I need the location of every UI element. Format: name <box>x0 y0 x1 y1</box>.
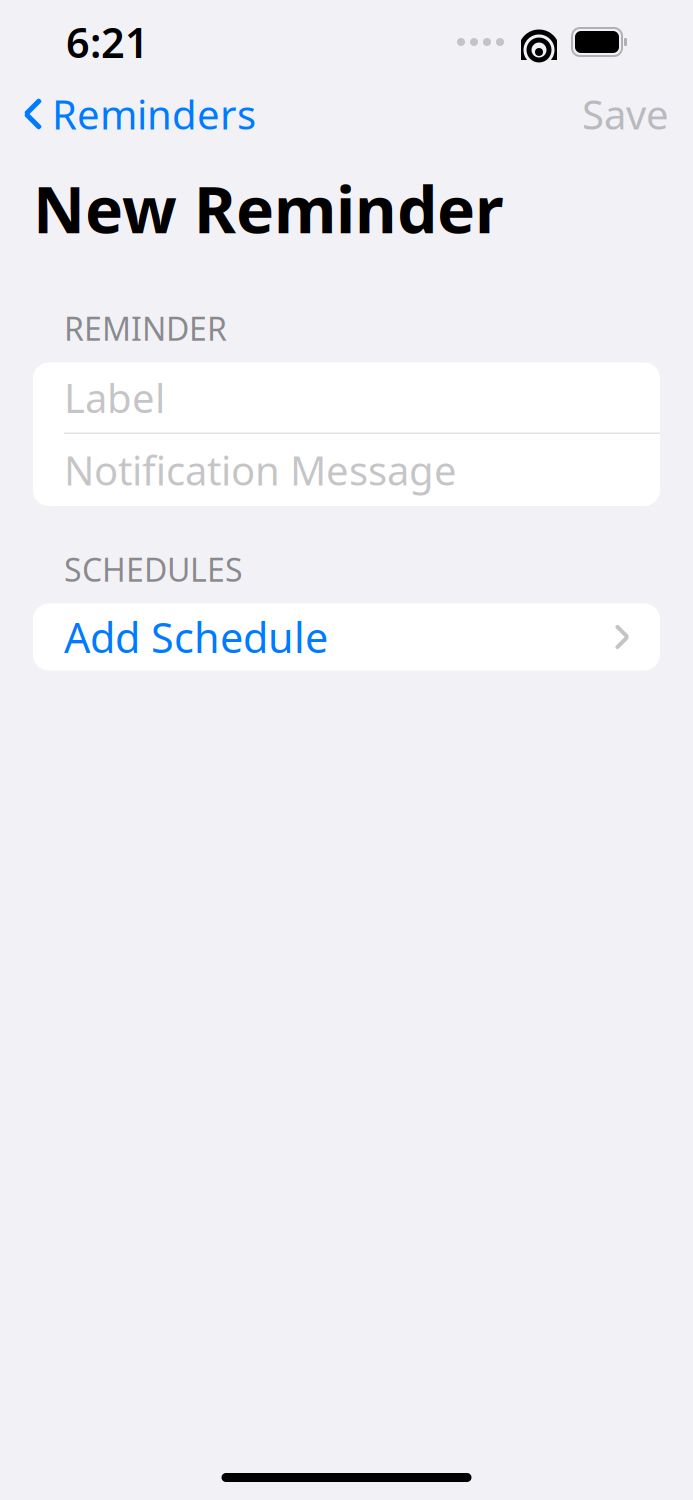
button[interactable]: Add Schedule <box>33 603 660 670</box>
staticText: Save <box>582 87 669 140</box>
button[interactable]: Label <box>33 362 660 432</box>
staticText: Add Schedule <box>64 609 328 664</box>
button[interactable]: Notification Message <box>33 434 660 506</box>
button[interactable]: Save <box>582 79 669 148</box>
staticText: 6:21 <box>66 15 149 69</box>
staticText: Label <box>64 371 165 424</box>
staticText: New Reminder <box>33 166 504 251</box>
staticText: SCHEDULES <box>64 548 243 590</box>
staticText: Reminders <box>52 87 256 140</box>
button[interactable]: Reminders <box>24 79 256 148</box>
staticText: Notification Message <box>64 443 457 496</box>
staticText: REMINDER <box>64 307 227 349</box>
